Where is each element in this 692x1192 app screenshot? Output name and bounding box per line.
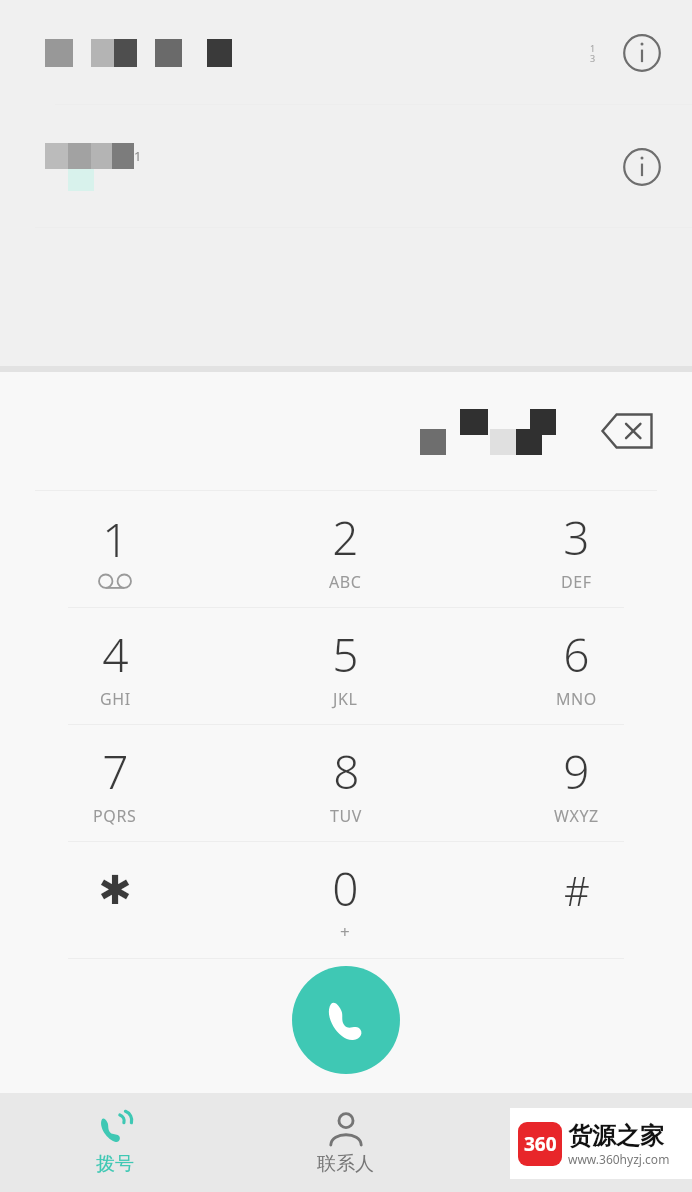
staticText: 1 <box>102 508 129 571</box>
staticText: www.360hyzj.com <box>568 1151 670 1167</box>
button[interactable]: 5 <box>230 608 461 724</box>
button[interactable]: 1 3 <box>0 0 692 105</box>
staticText: ✱ <box>98 867 132 914</box>
staticText: TUV <box>330 805 362 827</box>
button[interactable]: Call <box>292 966 400 1074</box>
button[interactable]: Backspace <box>584 388 670 474</box>
staticText: ABC <box>329 571 362 593</box>
button[interactable]: 8 <box>230 725 461 841</box>
staticText: 1 <box>134 147 142 165</box>
staticText: 360 <box>524 1131 557 1157</box>
staticText: 联系人 <box>317 1152 374 1176</box>
staticText: # <box>564 863 590 917</box>
staticText: 3 <box>563 506 590 569</box>
button[interactable]: 1 <box>0 491 230 607</box>
button[interactable]: ✱ <box>0 842 230 958</box>
staticText: DEF <box>561 571 592 593</box>
staticText: 0 <box>332 857 359 920</box>
button[interactable]: 4 <box>0 608 230 724</box>
staticText: JKL <box>333 688 358 710</box>
staticText: 1 3 <box>590 42 596 64</box>
staticText: 4 <box>102 623 129 686</box>
staticText: WXYZ <box>554 805 599 827</box>
button[interactable]: 6 <box>461 608 692 724</box>
button[interactable]: 9 <box>461 725 692 841</box>
staticText: 9 <box>563 740 590 803</box>
staticText: 货源之家 <box>568 1121 664 1151</box>
button[interactable]: Call details <box>612 23 672 83</box>
staticText: 2 <box>332 506 359 569</box>
button[interactable]: 联系人 <box>230 1093 461 1192</box>
button[interactable]: 2 <box>230 491 461 607</box>
button[interactable]: # <box>461 842 692 958</box>
staticText: MNO <box>556 688 597 710</box>
button[interactable]: Call details <box>612 137 672 197</box>
staticText: 5 <box>332 623 359 686</box>
button[interactable]: 7 <box>0 725 230 841</box>
button[interactable]: 3 <box>461 491 692 607</box>
button[interactable]: 1 <box>0 105 692 228</box>
staticText: 拨号 <box>96 1152 134 1176</box>
button[interactable]: 拨号 <box>0 1093 230 1192</box>
staticText: 8 <box>333 740 360 803</box>
staticText: GHI <box>100 688 131 710</box>
staticText: + <box>340 920 351 943</box>
staticText: 6 <box>563 623 590 686</box>
button[interactable]: 0 <box>230 842 461 958</box>
staticText: PQRS <box>93 805 137 827</box>
staticText: 7 <box>102 740 129 803</box>
